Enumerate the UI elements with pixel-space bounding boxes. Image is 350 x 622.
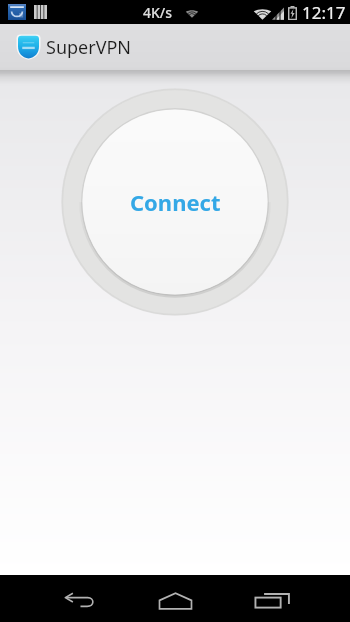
staticText: 12:17	[302, 1, 346, 24]
button[interactable]: Connect	[61, 88, 289, 316]
staticText: Connect	[130, 187, 221, 217]
staticText: SuperVPN	[46, 35, 132, 60]
button[interactable]: SuperVPN	[0, 24, 350, 70]
button[interactable]: Recent apps	[224, 575, 320, 622]
staticText: 4K/s	[143, 3, 173, 22]
button[interactable]: Home	[127, 575, 223, 622]
button[interactable]: Back	[30, 575, 126, 622]
